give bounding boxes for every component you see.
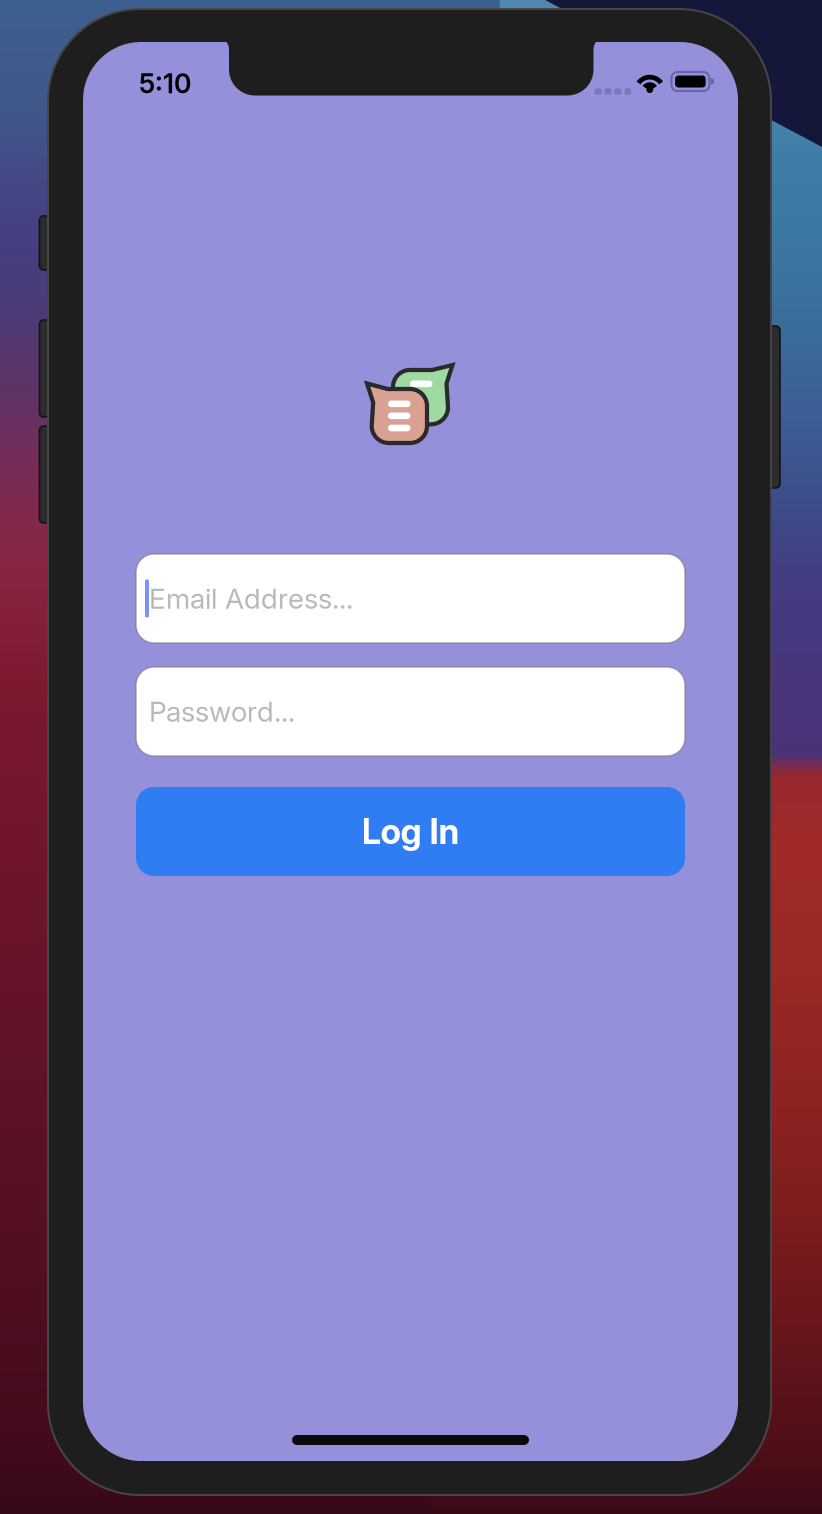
staticText: Password...: [149, 695, 295, 728]
staticText: Email Address...: [149, 582, 353, 615]
staticText: Log In: [361, 810, 459, 852]
button[interactable]: Log In: [136, 787, 685, 876]
staticText: 5:10: [139, 67, 191, 100]
